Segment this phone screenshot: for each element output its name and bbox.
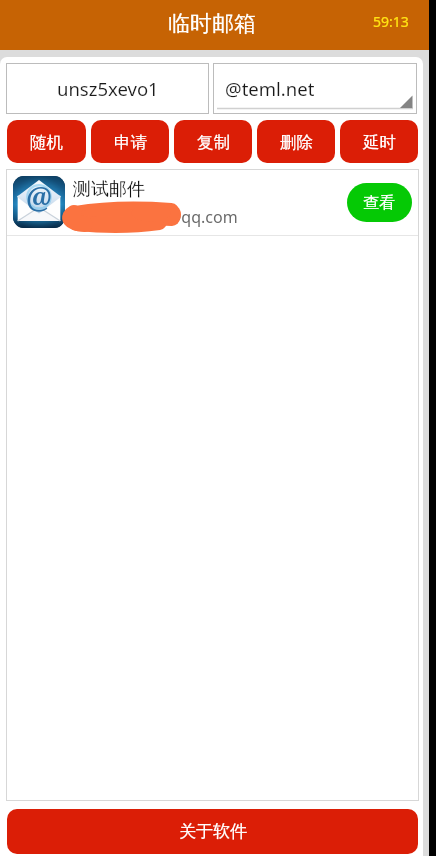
button[interactable]: 延时 <box>340 120 418 163</box>
staticText: 59:13 <box>373 12 409 31</box>
staticText: @ <box>26 178 52 216</box>
staticText: x1234567890@qq.com <box>67 206 238 228</box>
staticText: 随机 <box>30 132 63 153</box>
staticText: 申请 <box>114 132 147 153</box>
staticText: 删除 <box>280 132 313 153</box>
staticText: 测试邮件 <box>73 178 145 201</box>
button[interactable]: 复制 <box>174 120 252 163</box>
staticText: 延时 <box>363 132 396 153</box>
button[interactable]: unsz5xevo1 <box>6 63 209 114</box>
staticText: 查看 <box>363 193 395 213</box>
button[interactable]: 查看 <box>347 183 412 222</box>
button[interactable]: Mail domain @teml.net <box>213 63 417 114</box>
button[interactable]: 随机 <box>7 120 86 163</box>
button[interactable]: 删除 <box>257 120 335 163</box>
staticText: 临时邮箱 <box>168 10 256 38</box>
staticText: unsz5xevo1 <box>57 76 159 101</box>
button[interactable]: 关于软件 <box>7 809 418 854</box>
staticText: 关于软件 <box>179 821 247 842</box>
button[interactable]: @ <box>6 169 419 235</box>
button[interactable]: 申请 <box>91 120 169 163</box>
staticText: @teml.net <box>225 76 315 101</box>
staticText: 复制 <box>197 132 230 153</box>
